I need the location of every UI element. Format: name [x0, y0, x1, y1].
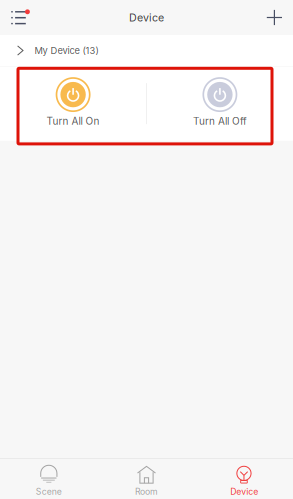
button[interactable]: My Device (13): [0, 35, 293, 66]
staticText: Turn All Off: [193, 115, 247, 127]
button[interactable]: Scene: [0, 461, 98, 497]
button[interactable]: Turn All On: [0, 67, 146, 141]
staticText: Turn All On: [47, 115, 100, 127]
staticText: Room: [135, 486, 158, 497]
button[interactable]: Room: [98, 461, 195, 497]
staticText: Scene: [36, 486, 62, 497]
staticText: Device: [230, 486, 258, 497]
button[interactable]: Menu: [0, 1, 42, 34]
button[interactable]: Device: [195, 461, 293, 497]
staticText: My Device (13): [35, 45, 99, 56]
button[interactable]: Turn All Off: [147, 67, 293, 141]
button[interactable]: Add device: [255, 0, 293, 35]
staticText: Device: [129, 11, 164, 24]
